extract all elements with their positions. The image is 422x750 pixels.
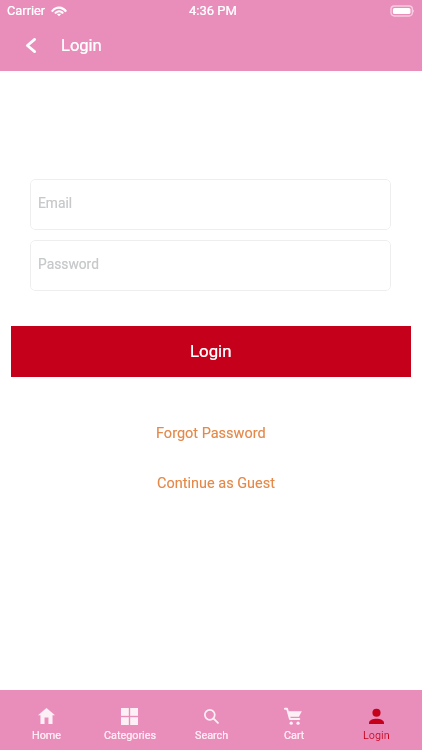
button[interactable]: Cart [253,690,335,750]
staticText: Carrier [7,3,46,18]
staticText: Categories [104,729,156,742]
staticText: Login [363,729,390,742]
button[interactable]: Password [30,240,391,291]
button[interactable]: Email [30,179,391,230]
button[interactable]: Categories [88,690,171,750]
staticText: Password [38,256,99,272]
staticText: Cart [284,729,305,742]
button[interactable]: Back [14,29,47,62]
staticText: Home [32,729,62,742]
staticText: 4:36 PM [189,3,237,18]
staticText: Forgot Password [156,425,266,442]
staticText: Email [38,195,73,211]
staticText: Continue as Guest [157,475,276,492]
staticText: Login [190,341,232,361]
staticText: Search [195,729,229,742]
button[interactable]: Continue as Guest [147,470,286,497]
button[interactable]: Forgot Password [146,420,276,447]
button[interactable]: Login [335,690,417,750]
button[interactable]: Login [11,326,411,377]
button[interactable]: Search [171,690,253,750]
button[interactable]: Home [5,690,88,750]
staticText: Login [61,36,102,55]
